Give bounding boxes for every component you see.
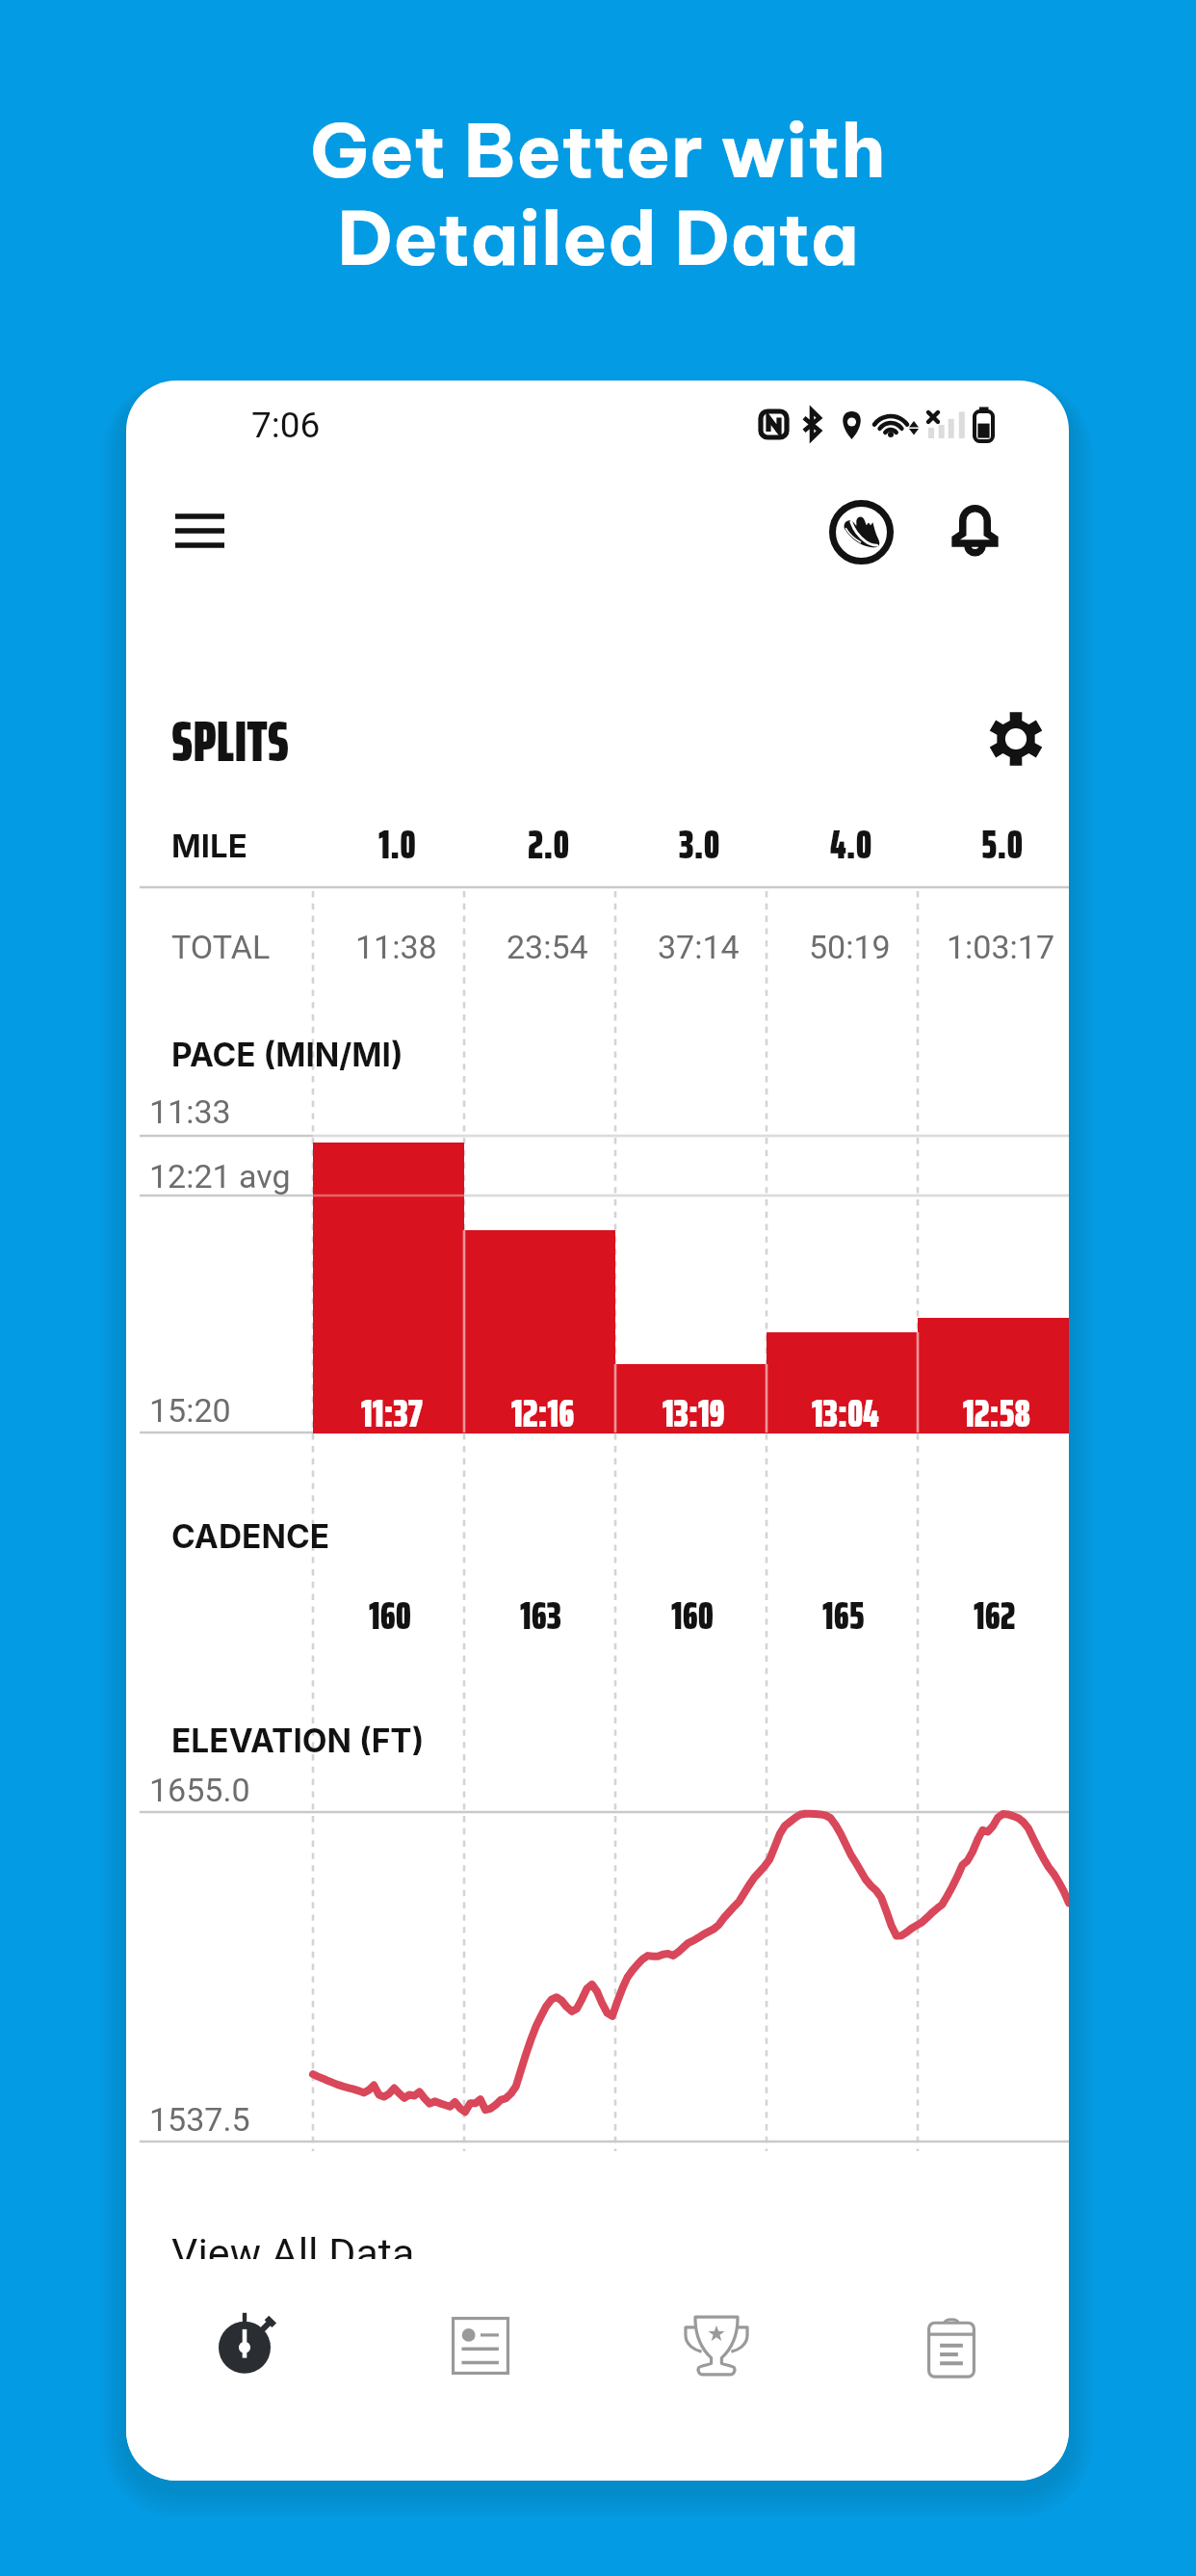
staticText: 12:21 avg: [149, 1157, 291, 1196]
button[interactable]: View All Data: [140, 2211, 544, 2294]
staticText: ELEVATION (FT): [171, 1722, 425, 1761]
staticText: TOTAL: [171, 928, 271, 966]
staticText: 3.0: [679, 812, 720, 865]
staticText: View All Data: [171, 2229, 415, 2277]
staticText: 50:19: [809, 928, 891, 966]
staticText: 160: [671, 1584, 714, 1636]
staticText: 11:38: [355, 928, 437, 966]
staticText: 4.0: [830, 812, 872, 865]
staticText: 1537.5: [149, 2100, 250, 2139]
button[interactable]: Menu: [161, 496, 230, 565]
staticText: 163: [520, 1584, 561, 1636]
staticText: 13:19: [663, 1381, 725, 1433]
staticText: 2.0: [528, 812, 570, 865]
staticText: 11:33: [149, 1092, 231, 1131]
button[interactable]: Challenges: [598, 2259, 834, 2481]
staticText: 13:04: [812, 1381, 879, 1433]
staticText: 15:20: [149, 1391, 231, 1430]
staticText: 1:03:17: [947, 928, 1055, 966]
staticText: 1655.0: [149, 1771, 250, 1809]
staticText: MILE: [171, 827, 247, 865]
staticText: 11:37: [361, 1381, 423, 1433]
button[interactable]: Activity: [828, 499, 895, 565]
button[interactable]: News: [362, 2259, 598, 2481]
staticText: 37:14: [658, 928, 740, 966]
staticText: 165: [822, 1584, 865, 1636]
staticText: 7:06: [251, 405, 321, 446]
staticText: 160: [369, 1584, 411, 1636]
staticText: 23:54: [507, 928, 588, 966]
staticText: Get Better with Detailed Data: [310, 103, 886, 284]
button[interactable]: Workouts: [126, 2259, 362, 2481]
staticText: SPLITS: [171, 696, 289, 772]
staticText: PACE (MIN/MI): [171, 1036, 403, 1075]
staticText: 162: [974, 1584, 1016, 1636]
button[interactable]: Settings: [987, 710, 1045, 768]
staticText: 5.0: [981, 812, 1024, 865]
staticText: 12:58: [963, 1381, 1030, 1433]
staticText: CADENCE: [171, 1517, 330, 1557]
button[interactable]: Notifications: [950, 500, 1000, 562]
staticText: 12:16: [511, 1381, 575, 1433]
staticText: 1.0: [378, 812, 416, 865]
button[interactable]: Plans: [833, 2259, 1069, 2481]
